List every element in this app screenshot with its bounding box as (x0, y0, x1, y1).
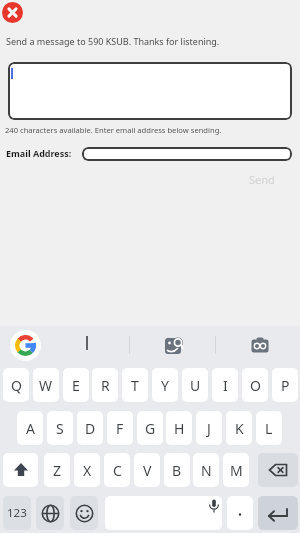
button[interactable]: J (196, 411, 222, 445)
button[interactable] (36, 496, 64, 530)
staticText: V (143, 461, 152, 480)
staticText: G (145, 419, 156, 438)
staticText: K (235, 419, 244, 438)
staticText: 123 (7, 505, 27, 521)
button[interactable]: Y (152, 368, 178, 402)
staticText: Email Address: (6, 147, 72, 159)
staticText: P (281, 376, 290, 395)
button[interactable]: H (166, 411, 192, 445)
button[interactable] (105, 496, 222, 530)
staticText: O (250, 376, 261, 395)
staticText: D (85, 419, 96, 438)
button[interactable] (82, 147, 292, 161)
button[interactable]: W (33, 368, 59, 402)
staticText: L (265, 419, 273, 438)
button[interactable]: P (272, 368, 298, 402)
button[interactable]: K (226, 411, 252, 445)
button[interactable]: Q (3, 368, 29, 402)
staticText: I (223, 376, 228, 395)
staticText: H (174, 419, 185, 438)
button[interactable] (258, 496, 298, 530)
staticText: W (39, 376, 53, 395)
staticText: U (190, 376, 201, 395)
staticText: Q (11, 376, 22, 395)
staticText: Y (161, 376, 169, 395)
button[interactable]: T (122, 368, 148, 402)
button[interactable]: F (107, 411, 133, 445)
staticText: E (72, 376, 80, 395)
staticText: B (172, 461, 182, 480)
button[interactable]: B (164, 453, 190, 487)
button[interactable]: L (256, 411, 282, 445)
staticText: F (116, 419, 124, 438)
staticText: Send a message to 590 KSUB. Thanks for l… (6, 35, 220, 47)
button[interactable] (2, 2, 23, 23)
staticText: J (207, 419, 211, 438)
button[interactable]: E (63, 368, 89, 402)
button[interactable] (70, 496, 98, 530)
button[interactable]: I (212, 368, 238, 402)
button[interactable] (8, 62, 292, 120)
staticText: A (26, 419, 35, 438)
button[interactable]: Send (240, 169, 284, 189)
button[interactable]: D (77, 411, 103, 445)
button[interactable] (3, 453, 38, 487)
button[interactable]: G (137, 411, 163, 445)
staticText: T (131, 376, 139, 395)
button[interactable]: X (74, 453, 100, 487)
button[interactable]: U (182, 368, 208, 402)
button[interactable]: R (92, 368, 118, 402)
button[interactable]: S (47, 411, 73, 445)
button[interactable]: N (193, 453, 219, 487)
staticText: 240 characters available. Enter email ad… (5, 125, 222, 135)
button[interactable]: Z (44, 453, 70, 487)
button[interactable]: O (242, 368, 268, 402)
button[interactable]: 123 (3, 496, 31, 530)
staticText: Z (53, 461, 62, 480)
button[interactable] (258, 453, 298, 487)
staticText: M (230, 461, 243, 480)
staticText: N (201, 461, 212, 480)
staticText: Send (249, 172, 275, 187)
button[interactable] (165, 336, 185, 356)
button[interactable]: C (104, 453, 130, 487)
button[interactable] (251, 337, 270, 355)
button[interactable]: A (17, 411, 43, 445)
button[interactable] (227, 496, 253, 530)
button[interactable]: V (134, 453, 160, 487)
button[interactable] (10, 330, 41, 361)
staticText: X (83, 461, 92, 480)
staticText: C (113, 461, 122, 480)
button[interactable]: M (223, 453, 249, 487)
staticText: R (101, 376, 110, 395)
staticText: S (56, 419, 64, 438)
